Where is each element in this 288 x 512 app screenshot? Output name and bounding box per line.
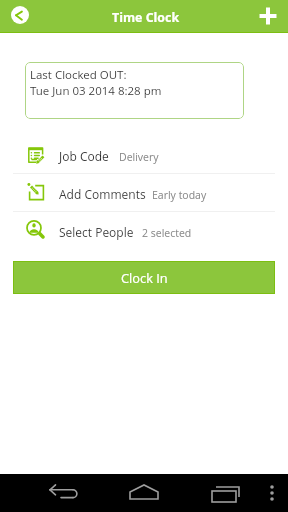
staticText: Add Comments	[59, 186, 146, 202]
staticText: Last Clocked OUT:	[30, 67, 127, 83]
staticText: 2 selected	[142, 226, 192, 240]
staticText: Early today	[152, 188, 207, 202]
button[interactable]: Clock In	[14, 262, 274, 293]
button[interactable]: Add	[252, 0, 288, 33]
button[interactable]: Select People	[0, 212, 288, 249]
button[interactable]: Add Comments	[0, 174, 288, 211]
button[interactable]: Back	[11, 6, 29, 24]
staticText: Clock In	[121, 269, 168, 286]
staticText: Delivery	[119, 150, 159, 164]
button[interactable]: Job Code	[0, 136, 288, 173]
staticText: Job Code	[59, 148, 109, 164]
staticText: Select People	[59, 224, 134, 240]
staticText: Time Clock	[112, 9, 180, 26]
staticText: Tue Jun 03 2014 8:28 pm	[30, 83, 162, 99]
